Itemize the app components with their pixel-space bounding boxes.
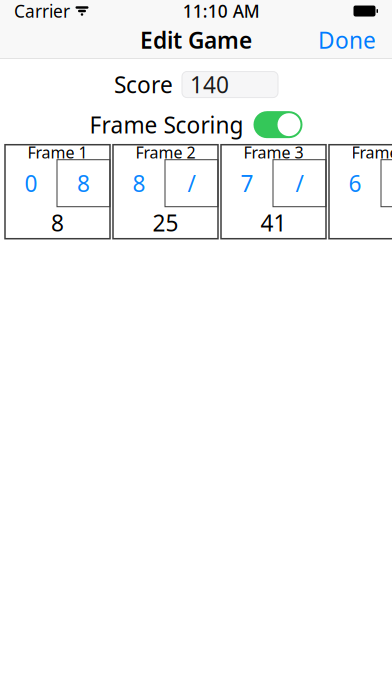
staticText: Done — [318, 25, 376, 55]
staticText: Frame Scoring — [89, 110, 243, 140]
staticText: Carrier — [14, 0, 70, 22]
staticText: Frame 3 — [243, 142, 303, 163]
staticText: 7 — [240, 168, 253, 198]
button[interactable]: Done — [308, 18, 386, 62]
staticText: / — [295, 168, 303, 198]
staticText: 41 — [260, 208, 286, 238]
staticText: Frame 1 — [27, 142, 87, 163]
staticText: Frame 2 — [135, 142, 195, 163]
staticText: 8 — [132, 168, 145, 198]
staticText: / — [187, 168, 195, 198]
button[interactable]: Frame Scoring — [253, 111, 302, 138]
staticText: 0 — [24, 168, 37, 198]
staticText: 8 — [77, 168, 90, 198]
staticText: Frame 4 — [351, 142, 392, 163]
staticText: 8 — [51, 208, 64, 238]
staticText: 6 — [348, 168, 361, 198]
staticText: Score — [114, 69, 173, 100]
staticText: 11:10 AM — [183, 0, 260, 22]
staticText: 140 — [190, 69, 229, 100]
staticText: 25 — [152, 208, 178, 238]
staticText: Edit Game — [140, 25, 252, 55]
